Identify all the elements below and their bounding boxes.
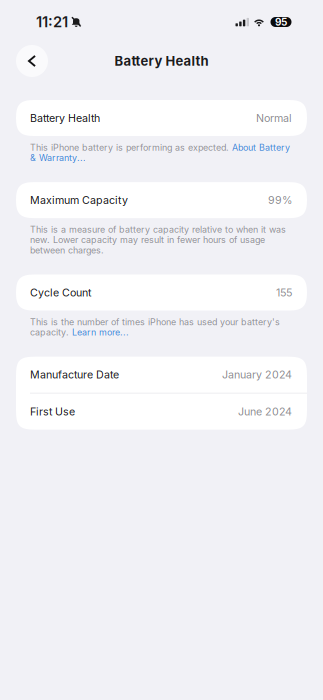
staticText: Battery Health — [114, 53, 208, 69]
staticText: This iPhone battery is performing as exp… — [30, 142, 232, 153]
staticText: January 2024 — [222, 368, 292, 381]
staticText: This is the number of times iPhone has u… — [30, 316, 280, 327]
staticText: Maximum Capacity — [30, 194, 128, 207]
staticText: Cycle Count — [30, 286, 91, 299]
staticText: Normal — [256, 111, 292, 124]
button[interactable]: First Use — [16, 394, 307, 430]
staticText: 95 — [275, 16, 287, 28]
staticText: This is a measure of battery capacity re… — [30, 224, 286, 235]
button[interactable]: Maximum Capacity — [16, 182, 307, 218]
button[interactable]: Manufacture Date — [16, 357, 307, 393]
staticText: Learn more... — [72, 327, 129, 338]
staticText: Battery Health — [30, 111, 100, 124]
staticText: Manufacture Date — [30, 368, 119, 381]
button[interactable]: Cycle Count — [16, 274, 307, 310]
staticText: between charges. — [30, 245, 104, 255]
staticText: First Use — [30, 405, 75, 418]
staticText: 99% — [268, 194, 292, 207]
staticText: 11:21 — [36, 13, 68, 31]
staticText: & Warranty... — [30, 152, 86, 163]
staticText: new. Lower capacity may result in fewer … — [30, 234, 265, 245]
staticText: capacity. — [30, 327, 72, 338]
staticText: About Battery — [232, 142, 290, 153]
staticText: 155 — [276, 286, 292, 299]
staticText: June 2024 — [238, 405, 292, 418]
button[interactable]: Back — [16, 45, 48, 77]
button[interactable]: Battery Health — [16, 100, 307, 136]
